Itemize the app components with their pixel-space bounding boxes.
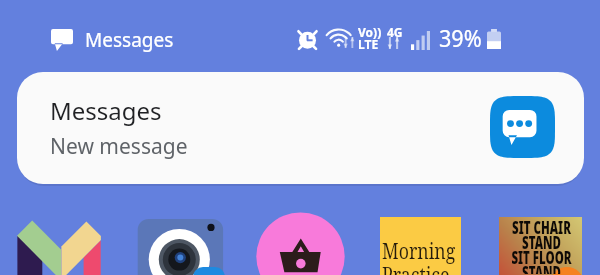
- button[interactable]: Messages: [17, 72, 584, 184]
- staticText: New message: [50, 132, 188, 161]
- staticText: Vo)): [358, 24, 382, 40]
- button[interactable]: Morning Practice: [380, 217, 461, 275]
- staticText: LTE: [358, 36, 379, 52]
- staticText: SIT CHAIR STAND SIT FLOOR STAND: [500, 216, 583, 274]
- staticText: Morning Practice: [382, 237, 475, 275]
- staticText: 39%: [439, 21, 482, 54]
- staticText: 4G: [387, 24, 403, 40]
- staticText: Messages: [50, 94, 162, 127]
- staticText: Messages: [85, 27, 174, 53]
- button[interactable]: SIT CHAIR STAND SIT FLOOR STAND: [499, 217, 582, 275]
